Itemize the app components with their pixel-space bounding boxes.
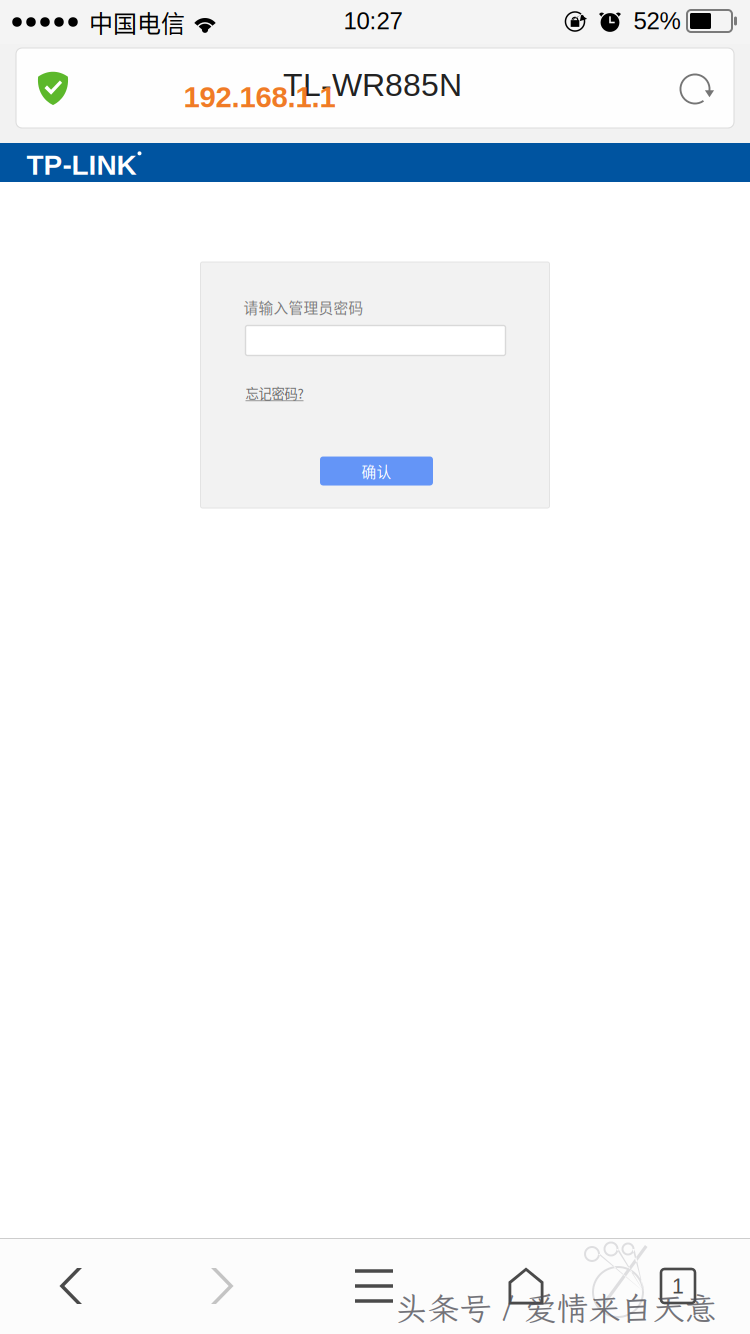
button[interactable]: Bookmarks (470, 1238, 582, 1333)
staticText: TP-LINK (26, 149, 136, 181)
staticText: 1 (672, 1274, 684, 1298)
button[interactable]: 忘记密码? (245, 383, 303, 403)
staticText: 192.168.1.1 (183, 81, 335, 113)
button[interactable] (245, 325, 505, 355)
staticText: 确认 (361, 460, 391, 482)
staticText: 10:27 (343, 8, 402, 34)
staticText: 头条号 / 爱情来自天意 (395, 1287, 716, 1329)
button[interactable]: Share (318, 1238, 430, 1333)
staticText: TL-WR885N (283, 67, 462, 103)
staticText: 52% (633, 8, 680, 34)
staticText: 请输入管理员密码 (243, 296, 363, 318)
staticText: 忘记密码? (245, 383, 303, 403)
button[interactable]: 确认 (320, 456, 433, 485)
button[interactable]: TL-WR885N (16, 48, 734, 128)
staticText: 中国电信 (89, 5, 185, 39)
button[interactable]: Back (15, 1238, 127, 1333)
button[interactable]: Forward (166, 1238, 278, 1333)
button[interactable]: Tabs (622, 1238, 734, 1333)
